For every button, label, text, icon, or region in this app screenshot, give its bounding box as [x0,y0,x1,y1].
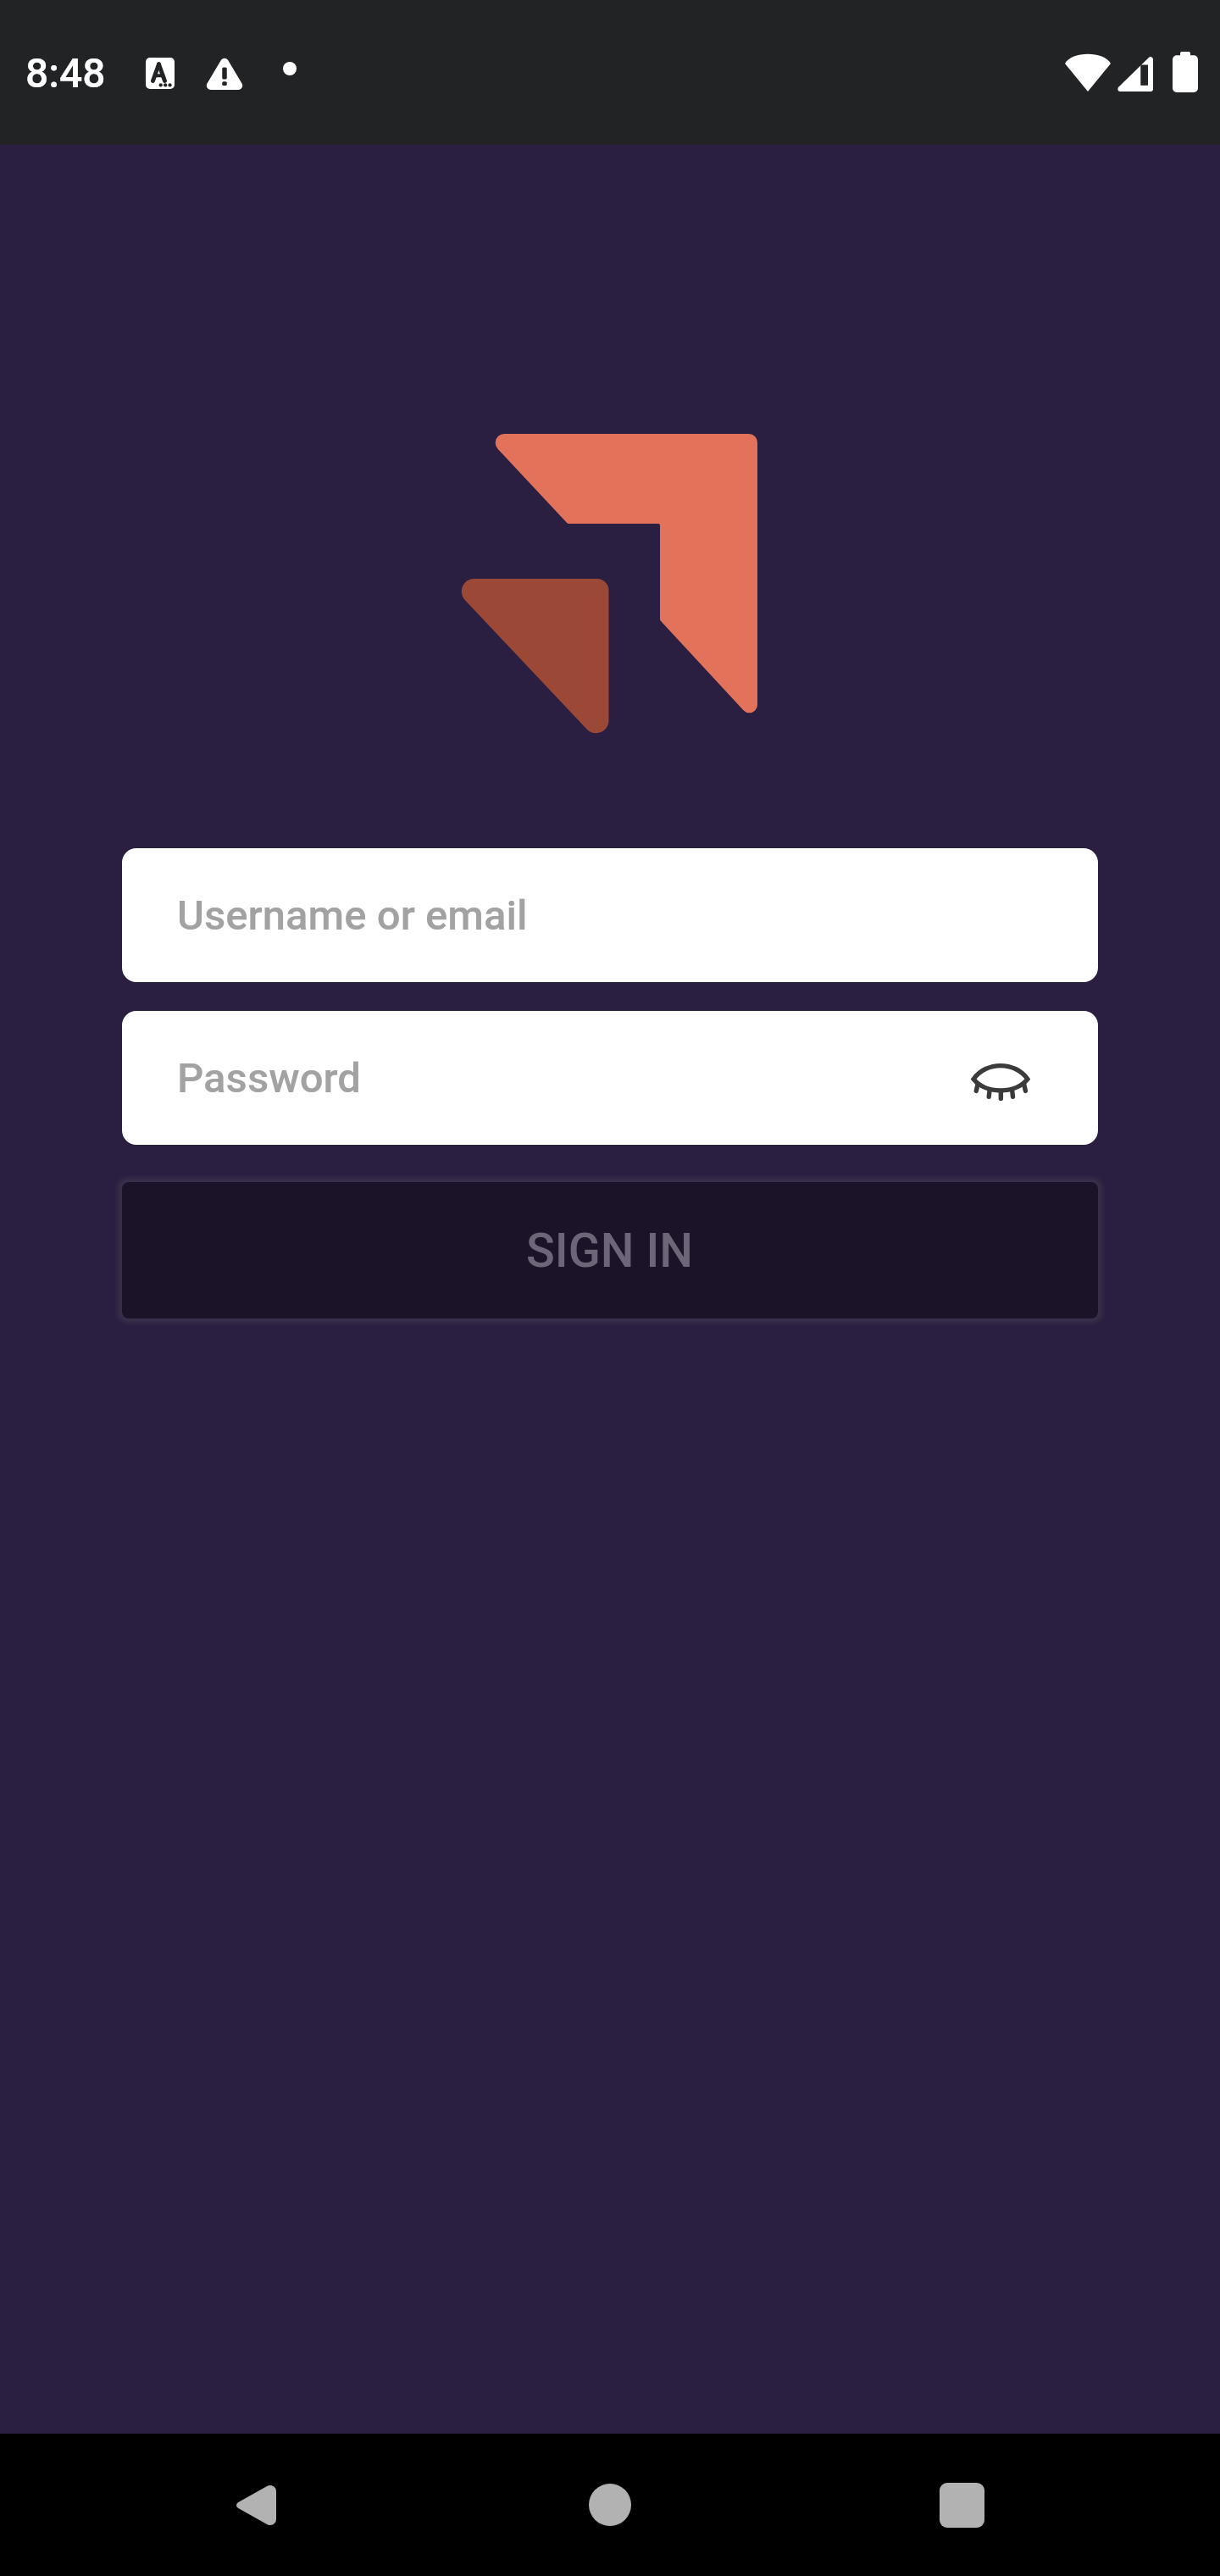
button[interactable]: Recent apps [911,2434,1012,2576]
button[interactable]: Password [122,1011,1098,1145]
staticText: Password [177,1054,362,1102]
staticText: 8:48 [25,49,106,97]
staticText: Username or email [177,891,528,940]
button[interactable]: Home [559,2434,661,2576]
button[interactable]: SIGN IN [122,1182,1098,1319]
staticText: SIGN IN [526,1223,694,1279]
button[interactable]: Show password [960,1037,1041,1119]
button[interactable]: Back [203,2434,305,2576]
button[interactable]: Username or email [122,848,1098,982]
